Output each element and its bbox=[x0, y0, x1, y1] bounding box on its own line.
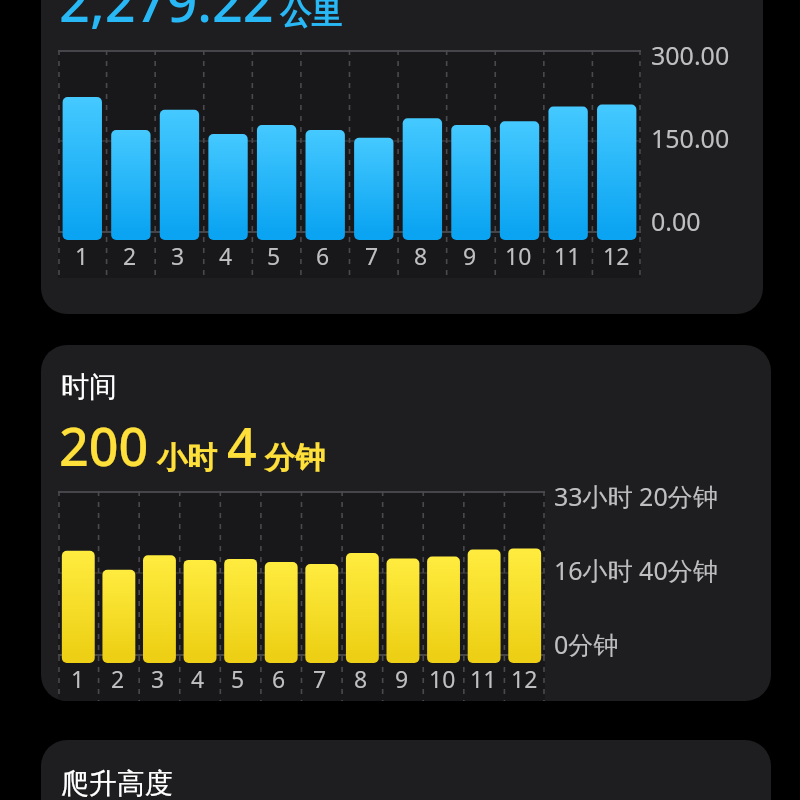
staticText: 2 bbox=[123, 240, 137, 271]
staticText: 5 bbox=[267, 240, 281, 271]
staticText: 12 bbox=[511, 663, 538, 694]
staticText: 300.00 bbox=[651, 38, 730, 72]
staticText: 9 bbox=[395, 663, 409, 694]
staticText: 2,279.22 bbox=[59, 0, 274, 38]
staticText: 9 bbox=[463, 240, 477, 271]
staticText: 11 bbox=[470, 663, 497, 694]
staticText: 3 bbox=[171, 240, 185, 271]
staticText: 16小时 40分钟 bbox=[554, 553, 718, 587]
staticText: 10 bbox=[505, 240, 532, 271]
staticText: 7 bbox=[365, 240, 379, 271]
staticText: 8 bbox=[354, 663, 368, 694]
staticText: 5 bbox=[231, 663, 245, 694]
staticText: 0.00 bbox=[651, 204, 701, 238]
button[interactable]: 爬升高度 bbox=[41, 740, 771, 800]
staticText: 公里 bbox=[280, 0, 342, 33]
button[interactable]: 时间 bbox=[41, 345, 771, 701]
staticText: 4 bbox=[219, 240, 233, 271]
staticText: 11 bbox=[554, 240, 581, 271]
staticText: 200 bbox=[59, 410, 149, 481]
staticText: 4 bbox=[191, 663, 205, 694]
staticText: 爬升高度 bbox=[61, 766, 173, 800]
staticText: 12 bbox=[603, 240, 630, 271]
staticText: 3 bbox=[151, 663, 165, 694]
staticText: 33小时 20分钟 bbox=[554, 479, 718, 513]
staticText: 分钟 bbox=[265, 439, 325, 477]
staticText: 150.00 bbox=[651, 121, 730, 155]
staticText: 2 bbox=[111, 663, 125, 694]
staticText: 8 bbox=[414, 240, 428, 271]
staticText: 小时 bbox=[157, 439, 217, 477]
button[interactable]: 距离 bbox=[41, 0, 763, 314]
staticText: 6 bbox=[316, 240, 330, 271]
staticText: 4 bbox=[227, 410, 257, 481]
staticText: 0分钟 bbox=[554, 627, 619, 661]
staticText: 7 bbox=[313, 663, 327, 694]
staticText: 1 bbox=[75, 240, 89, 271]
staticText: 6 bbox=[272, 663, 286, 694]
staticText: 时间 bbox=[61, 369, 117, 404]
staticText: 10 bbox=[429, 663, 456, 694]
staticText: 1 bbox=[71, 663, 85, 694]
